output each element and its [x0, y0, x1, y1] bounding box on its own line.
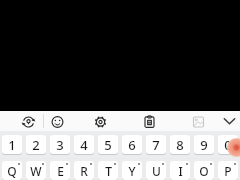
- button[interactable]: Q: [2, 161, 22, 180]
- staticText: T: [105, 163, 112, 179]
- staticText: P: [224, 163, 232, 179]
- button[interactable]: 7: [146, 135, 166, 154]
- staticText: I: [178, 163, 183, 179]
- button[interactable]: 2: [26, 135, 46, 154]
- staticText: W: [30, 163, 42, 179]
- button[interactable]: W: [26, 161, 46, 180]
- staticText: R: [80, 163, 88, 179]
- button[interactable]: [219, 111, 240, 131]
- staticText: E: [57, 163, 64, 179]
- staticText: 7: [152, 136, 160, 154]
- staticText: O: [199, 163, 209, 179]
- staticText: 2: [32, 136, 40, 154]
- staticText: 6: [128, 136, 136, 154]
- button[interactable]: U: [146, 161, 166, 180]
- button[interactable]: [139, 111, 160, 131]
- button[interactable]: 0: [218, 135, 238, 154]
- button[interactable]: [47, 111, 68, 131]
- button[interactable]: 4: [74, 135, 94, 154]
- staticText: Q: [7, 163, 17, 179]
- button[interactable]: P: [218, 161, 238, 180]
- button[interactable]: 9: [194, 135, 214, 154]
- staticText: Y: [128, 163, 136, 179]
- button[interactable]: I: [170, 161, 190, 180]
- staticText: U: [152, 163, 161, 179]
- button[interactable]: 1: [2, 135, 22, 154]
- button[interactable]: 8: [170, 135, 190, 154]
- button[interactable]: Y: [122, 161, 142, 180]
- button[interactable]: [188, 111, 209, 131]
- button[interactable]: 6: [122, 135, 142, 154]
- button[interactable]: T: [98, 161, 118, 180]
- staticText: 5: [104, 136, 112, 154]
- staticText: 0: [224, 136, 232, 154]
- button[interactable]: E: [50, 161, 70, 180]
- button[interactable]: O: [194, 161, 214, 180]
- button[interactable]: [227, 138, 240, 157]
- button[interactable]: [90, 111, 111, 131]
- button[interactable]: 5: [98, 135, 118, 154]
- staticText: 3: [56, 136, 64, 154]
- staticText: 1: [8, 136, 16, 154]
- button[interactable]: R: [74, 161, 94, 180]
- staticText: 4: [80, 136, 88, 154]
- button[interactable]: [18, 111, 39, 131]
- button[interactable]: 3: [50, 135, 70, 154]
- staticText: 9: [200, 136, 208, 154]
- staticText: 8: [176, 136, 184, 154]
